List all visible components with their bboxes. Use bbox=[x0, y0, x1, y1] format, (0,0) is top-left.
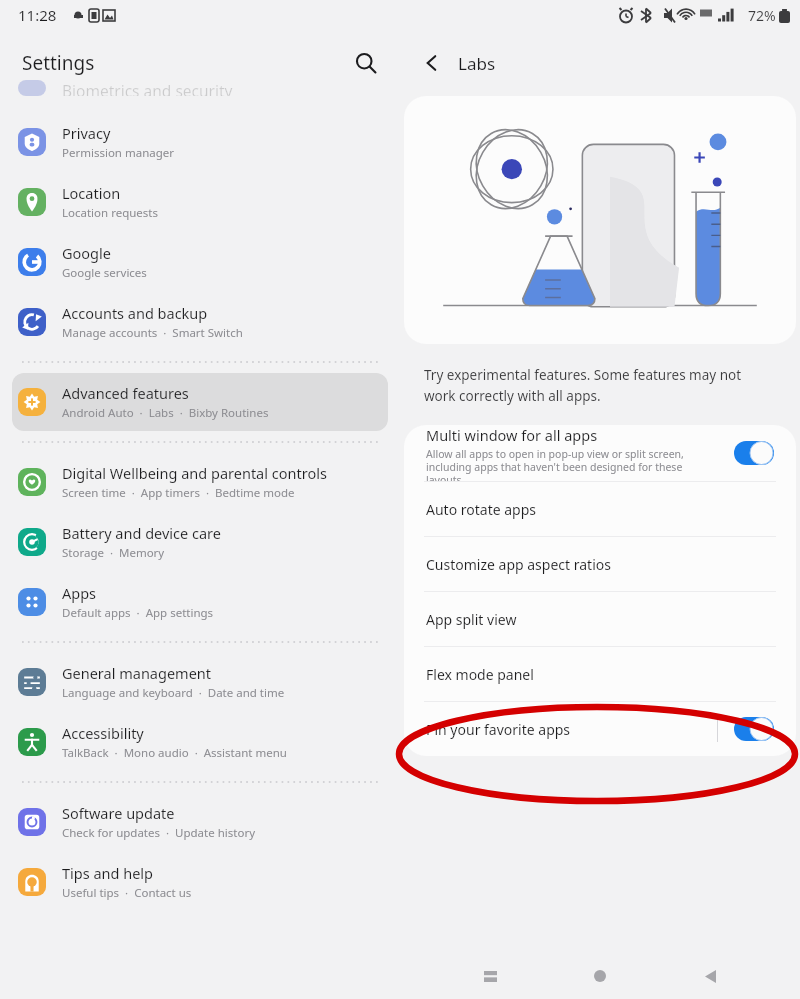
button[interactable]: Search bbox=[344, 41, 388, 85]
staticText: App split view bbox=[426, 610, 517, 629]
staticText: Storage · Memory bbox=[62, 545, 165, 561]
staticText: Location bbox=[62, 183, 121, 203]
button[interactable]: Customize app aspect ratios bbox=[404, 537, 796, 591]
button[interactable]: Pin your favorite apps bbox=[404, 702, 796, 756]
button[interactable]: Back bbox=[690, 956, 730, 996]
staticText: Biometrics and security bbox=[62, 80, 233, 96]
staticText: Tips and help bbox=[62, 863, 154, 883]
staticText: Privacy bbox=[62, 123, 111, 143]
staticText: Labs bbox=[458, 52, 496, 75]
button[interactable]: Multi window for all apps bbox=[404, 425, 796, 481]
button[interactable]: Location bbox=[12, 173, 388, 231]
staticText: 11:28 bbox=[18, 5, 57, 25]
staticText: Check for updates · Update history bbox=[62, 825, 255, 841]
staticText: 72% bbox=[748, 6, 776, 25]
button[interactable]: Flex mode panel bbox=[404, 647, 796, 701]
button[interactable]: Toggle on bbox=[734, 717, 774, 741]
staticText: Multi window for all apps bbox=[426, 425, 598, 445]
button[interactable]: Auto rotate apps bbox=[404, 482, 796, 536]
button[interactable]: Settings bbox=[22, 50, 95, 76]
button[interactable]: Toggle on bbox=[734, 441, 774, 465]
button[interactable]: Back bbox=[412, 43, 452, 83]
staticText: Flex mode panel bbox=[426, 665, 534, 684]
staticText: Accounts and backup bbox=[62, 303, 208, 323]
button[interactable]: Home bbox=[580, 956, 620, 996]
button[interactable]: Privacy bbox=[12, 113, 388, 171]
button[interactable]: App split view bbox=[404, 592, 796, 646]
button[interactable]: Tips and help bbox=[12, 853, 388, 911]
button[interactable]: Accounts and backup bbox=[12, 293, 388, 351]
button[interactable]: Battery and device care bbox=[12, 513, 388, 571]
staticText: Battery and device care bbox=[62, 523, 221, 543]
staticText: Accessibility bbox=[62, 723, 144, 743]
button[interactable]: Google bbox=[12, 233, 388, 291]
button[interactable]: Accessibility bbox=[12, 713, 388, 771]
staticText: Pin your favorite apps bbox=[426, 720, 571, 739]
button[interactable]: General management bbox=[12, 653, 388, 711]
staticText: Location requests bbox=[62, 205, 158, 221]
staticText: Useful tips · Contact us bbox=[62, 885, 192, 901]
button[interactable]: Apps bbox=[12, 573, 388, 631]
button[interactable]: Advanced features bbox=[12, 373, 388, 431]
staticText: Screen time · App timers · Bedtime mode bbox=[62, 485, 295, 501]
staticText: Allow all apps to open in pop-up view or… bbox=[426, 447, 722, 481]
staticText: Permission manager bbox=[62, 145, 175, 161]
button[interactable]: Software update bbox=[12, 793, 388, 851]
staticText: Default apps · App settings bbox=[62, 605, 214, 621]
staticText: Auto rotate apps bbox=[426, 500, 537, 519]
staticText: Advanced features bbox=[62, 383, 189, 403]
staticText: Digital Wellbeing and parental controls bbox=[62, 463, 327, 483]
button[interactable]: Digital Wellbeing and parental controls bbox=[12, 453, 388, 511]
staticText: Android Auto · Labs · Bixby Routines bbox=[62, 405, 269, 421]
staticText: Language and keyboard · Date and time bbox=[62, 685, 285, 701]
staticText: Customize app aspect ratios bbox=[426, 555, 611, 574]
staticText: Software update bbox=[62, 803, 175, 823]
staticText: Google bbox=[62, 243, 111, 263]
staticText: TalkBack · Mono audio · Assistant menu bbox=[62, 745, 287, 761]
staticText: General management bbox=[62, 663, 212, 683]
staticText: Try experimental features. Some features… bbox=[424, 366, 776, 405]
staticText: Google services bbox=[62, 265, 147, 281]
button[interactable]: Recents bbox=[470, 956, 510, 996]
staticText: Manage accounts · Smart Switch bbox=[62, 325, 243, 341]
staticText: Apps bbox=[62, 583, 97, 603]
